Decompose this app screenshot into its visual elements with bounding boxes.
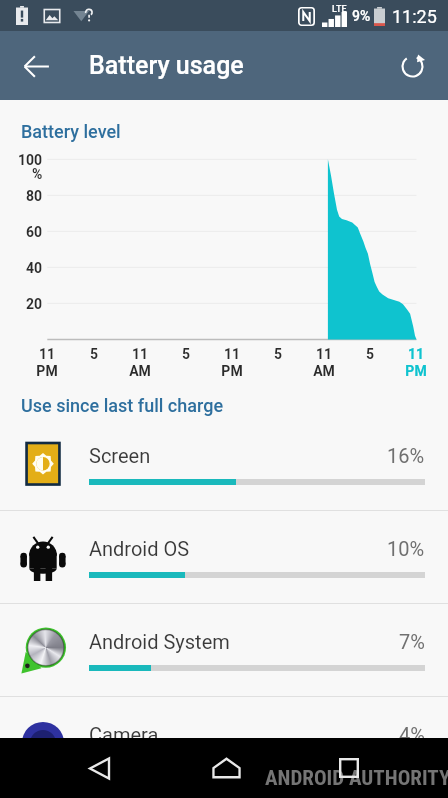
- staticText: 100: [18, 152, 43, 168]
- staticText: 7%: [399, 630, 425, 653]
- button[interactable]: Screen: [0, 418, 448, 510]
- staticText: ANDROID AUTHORITY: [265, 766, 448, 791]
- staticText: 20: [26, 296, 43, 312]
- staticText: 60: [26, 224, 43, 240]
- staticText: Android OS: [89, 537, 190, 560]
- staticText: 16%: [387, 444, 425, 467]
- staticText: AM: [110, 363, 170, 379]
- staticText: 80: [26, 188, 43, 204]
- button[interactable]: Camera: [0, 697, 448, 789]
- staticText: 5: [156, 346, 216, 362]
- button[interactable]: Recent apps: [311, 738, 387, 798]
- staticText: 11: [386, 346, 446, 362]
- staticText: Android System: [89, 630, 230, 653]
- staticText: 11: [294, 346, 354, 362]
- staticText: Use since last full charge: [21, 395, 224, 416]
- button[interactable]: Android System: [0, 604, 448, 696]
- button[interactable]: Back: [61, 738, 137, 798]
- button[interactable]: Refresh: [384, 38, 440, 94]
- staticText: PM: [386, 363, 446, 379]
- staticText: 5: [64, 346, 124, 362]
- staticText: 10%: [387, 537, 425, 560]
- staticText: 11: [202, 346, 262, 362]
- button[interactable]: Navigate up: [8, 38, 64, 94]
- staticText: 11: [17, 346, 77, 362]
- staticText: Camera: [89, 723, 159, 746]
- staticText: 11:25: [392, 6, 437, 27]
- staticText: AM: [294, 363, 354, 379]
- staticText: %: [32, 166, 43, 182]
- button[interactable]: Home: [188, 738, 264, 798]
- staticText: PM: [202, 363, 262, 379]
- staticText: LTE: [332, 4, 347, 15]
- staticText: 5: [248, 346, 308, 362]
- staticText: 11: [110, 346, 170, 362]
- staticText: 5: [340, 346, 400, 362]
- staticText: 40: [26, 260, 43, 276]
- staticText: Battery usage: [89, 51, 244, 80]
- staticText: Screen: [89, 444, 151, 467]
- staticText: 4%: [399, 723, 425, 746]
- button[interactable]: Android OS: [0, 511, 448, 603]
- staticText: Battery level: [21, 121, 121, 142]
- staticText: 9%: [352, 8, 371, 24]
- staticText: PM: [17, 363, 77, 379]
